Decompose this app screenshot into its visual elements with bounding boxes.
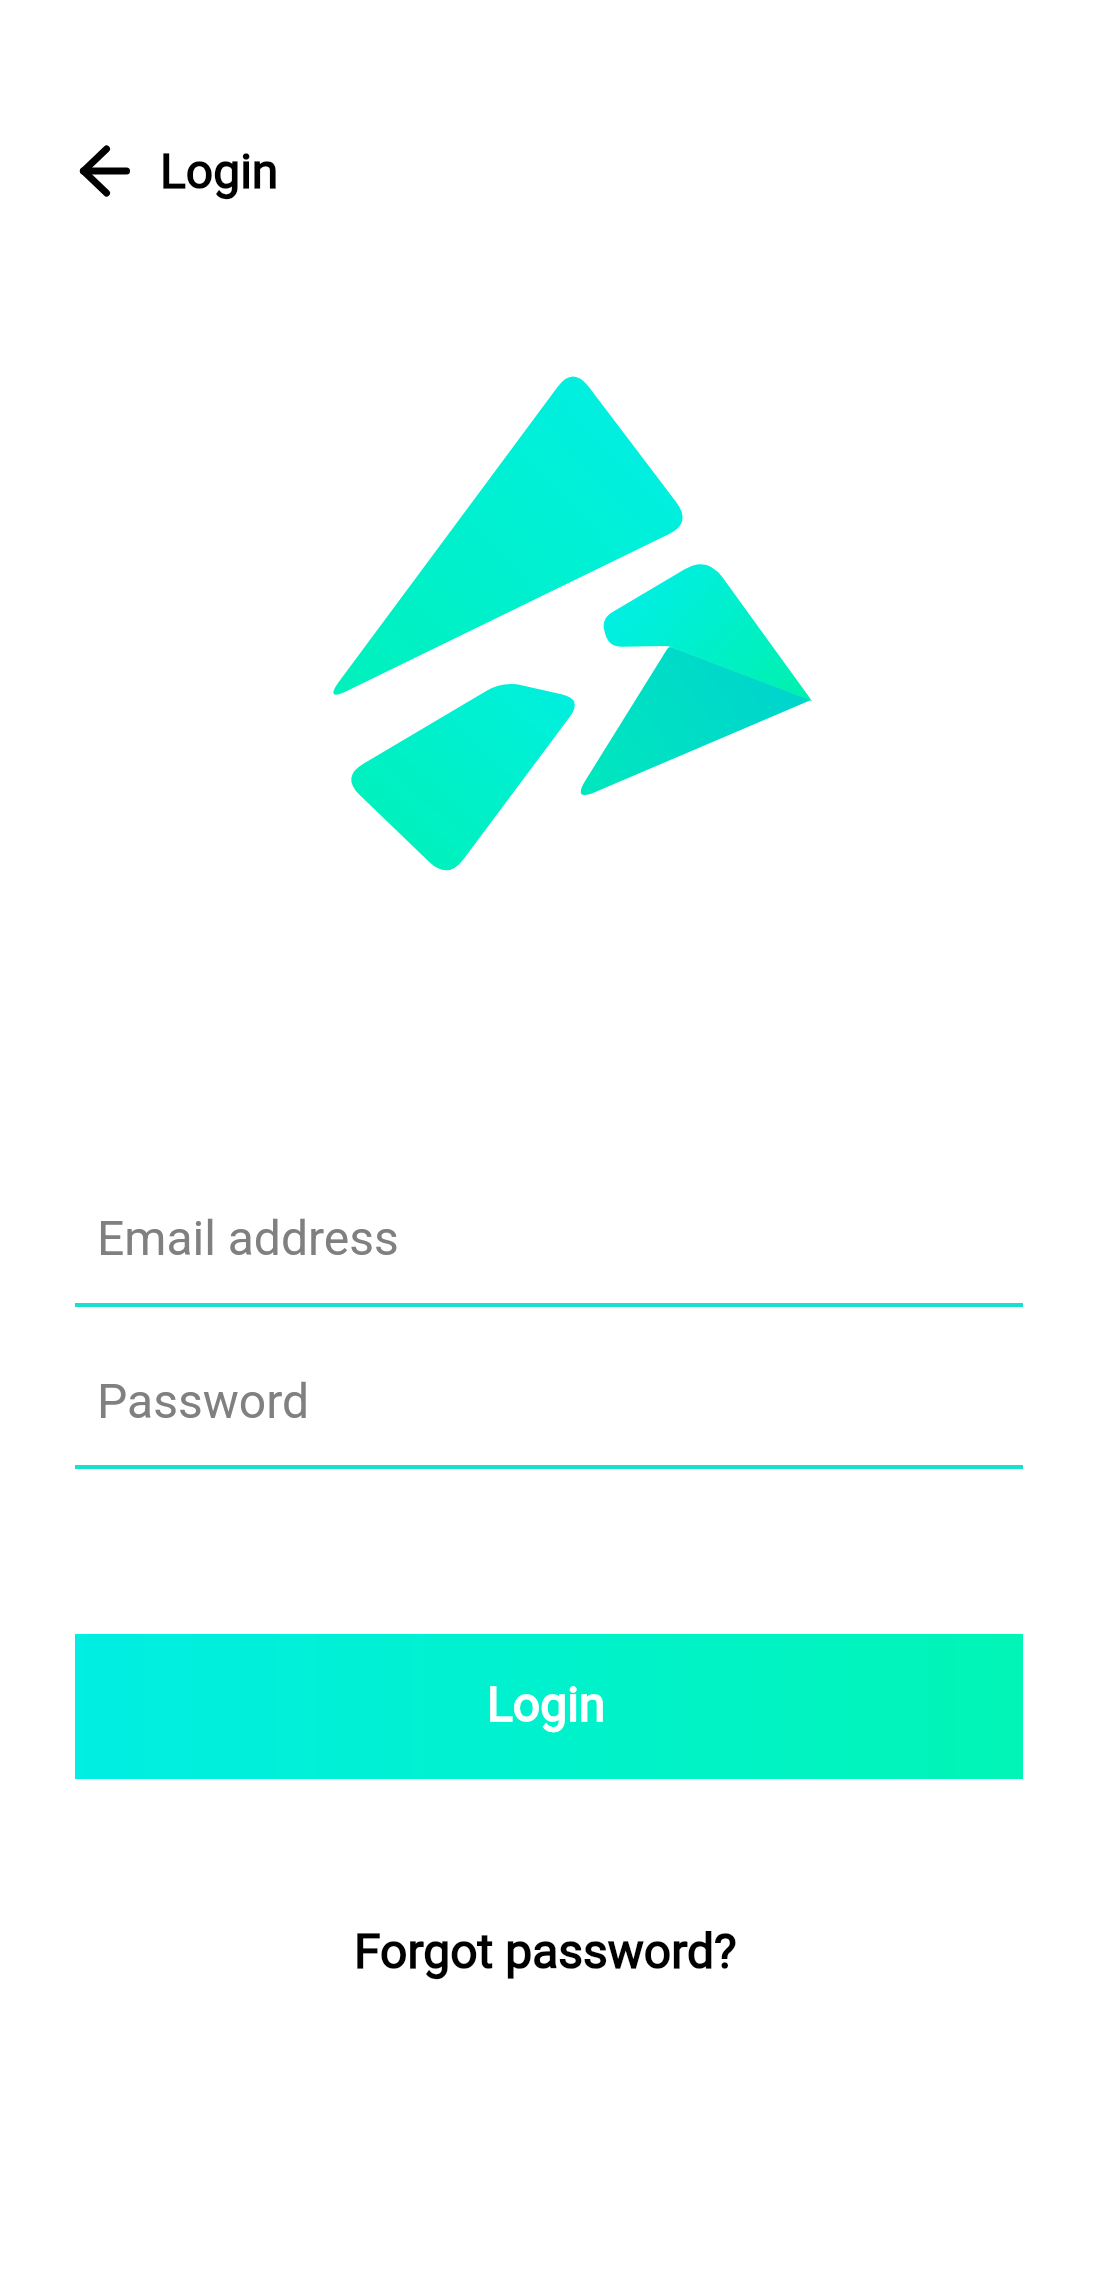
staticText: Forgot password? <box>354 1923 737 1979</box>
staticText: Login <box>160 143 279 199</box>
button[interactable]: Login <box>75 1634 1023 1779</box>
staticText: Email address <box>97 1210 399 1266</box>
button[interactable] <box>75 1186 1023 1307</box>
button[interactable]: Forgot password? <box>330 1911 761 1991</box>
staticText: Password <box>97 1373 310 1429</box>
staticText: Login <box>487 1676 606 1732</box>
button[interactable] <box>75 1349 1023 1470</box>
button[interactable]: Back <box>45 111 165 231</box>
